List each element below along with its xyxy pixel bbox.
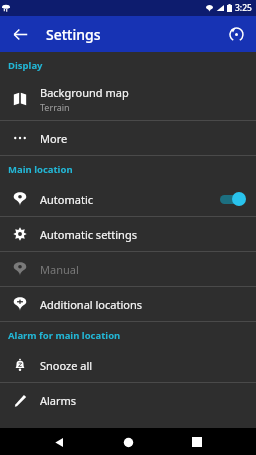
staticText: Background map bbox=[40, 85, 129, 100]
staticText: Additional locations bbox=[40, 297, 143, 312]
button[interactable]: Background map bbox=[0, 78, 256, 120]
staticText: Main location bbox=[8, 163, 73, 176]
button[interactable]: More bbox=[0, 121, 256, 155]
button[interactable]: Home bbox=[117, 431, 139, 453]
staticText: Alarm for main location bbox=[8, 329, 121, 342]
button[interactable]: Manual bbox=[0, 252, 256, 286]
button[interactable]: Restore defaults bbox=[224, 22, 248, 46]
staticText: Automatic bbox=[40, 192, 93, 207]
staticText: Automatic settings bbox=[40, 227, 137, 242]
button[interactable]: Additional locations bbox=[0, 287, 256, 321]
button[interactable]: Back bbox=[48, 431, 70, 453]
staticText: Snooze all bbox=[40, 358, 93, 373]
staticText: 3:25 bbox=[235, 2, 252, 14]
staticText: Alarms bbox=[40, 393, 77, 408]
button[interactable] bbox=[218, 192, 246, 206]
staticText: Manual bbox=[40, 262, 79, 277]
button[interactable]: Alarms bbox=[0, 383, 256, 417]
button[interactable]: Snooze all bbox=[0, 348, 256, 382]
button[interactable]: Back bbox=[8, 22, 32, 46]
staticText: Display bbox=[8, 59, 43, 72]
staticText: More bbox=[40, 131, 68, 146]
staticText: Terrain bbox=[40, 101, 70, 113]
button[interactable]: Automatic bbox=[0, 182, 256, 216]
button[interactable]: Automatic settings bbox=[0, 217, 256, 251]
staticText: Settings bbox=[46, 25, 101, 44]
button[interactable]: Recent apps bbox=[186, 431, 208, 453]
